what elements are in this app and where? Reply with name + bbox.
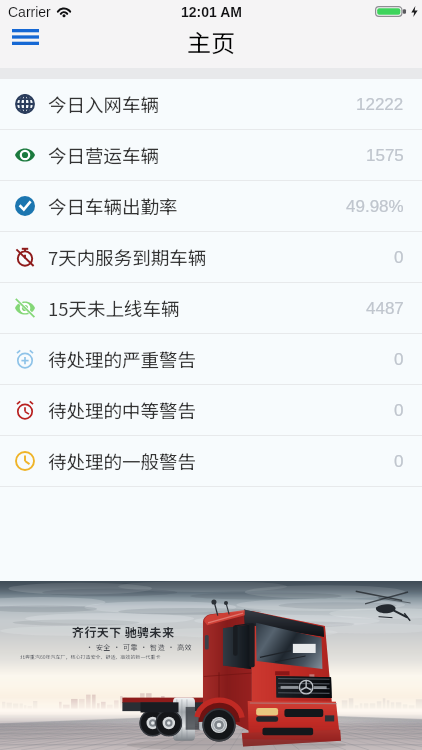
button[interactable]: 15天未上线车辆 bbox=[0, 283, 422, 334]
staticText: 北奔重汽60年汽车厂，核心打造安全、舒适、高效的新一代重卡 bbox=[20, 653, 161, 660]
staticText: 0 bbox=[394, 452, 404, 471]
button[interactable]: Promotional banner bbox=[0, 581, 422, 750]
staticText: 0 bbox=[394, 350, 404, 369]
button[interactable]: 今日车辆出勤率 bbox=[0, 181, 422, 232]
staticText: 待处理的中等警告 bbox=[48, 397, 197, 424]
button[interactable]: Menu bbox=[4, 22, 46, 52]
button[interactable]: 7天内服务到期车辆 bbox=[0, 232, 422, 283]
staticText: 待处理的一般警告 bbox=[48, 448, 197, 475]
staticText: 今日车辆出勤率 bbox=[48, 193, 178, 220]
staticText: • 安全 • 可靠 • 智造 • 高效 bbox=[86, 642, 193, 652]
staticText: 0 bbox=[394, 248, 404, 267]
staticText: Carrier bbox=[8, 4, 51, 20]
staticText: 0 bbox=[394, 401, 404, 420]
staticText: 4487 bbox=[366, 299, 404, 318]
staticText: 待处理的严重警告 bbox=[48, 346, 197, 373]
staticText: 1575 bbox=[366, 146, 404, 165]
staticText: 今日入网车辆 bbox=[48, 91, 160, 118]
button[interactable]: 待处理的中等警告 bbox=[0, 385, 422, 436]
staticText: 49.98% bbox=[346, 197, 404, 216]
staticText: 今日营运车辆 bbox=[48, 142, 160, 169]
staticText: 12:01 AM bbox=[181, 4, 242, 20]
staticText: 12222 bbox=[356, 95, 404, 114]
staticText: 主页 bbox=[187, 24, 235, 59]
button[interactable]: 待处理的严重警告 bbox=[0, 334, 422, 385]
button[interactable]: 今日入网车辆 bbox=[0, 79, 422, 130]
button[interactable]: 待处理的一般警告 bbox=[0, 436, 422, 487]
staticText: 15天未上线车辆 bbox=[48, 295, 180, 322]
staticText: 7天内服务到期车辆 bbox=[48, 244, 207, 271]
staticText: 齐行天下 驰骋未来 bbox=[72, 623, 175, 640]
button[interactable]: 今日营运车辆 bbox=[0, 130, 422, 181]
